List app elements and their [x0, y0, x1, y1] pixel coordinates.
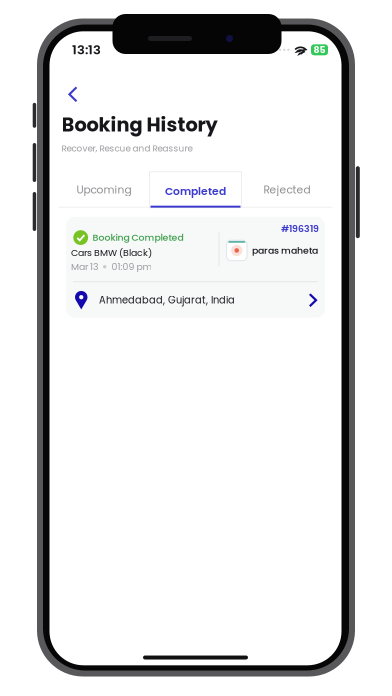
staticText: Completed [165, 184, 226, 199]
staticText: Upcoming [76, 182, 131, 197]
staticText: Cars BMW (Black) [71, 246, 152, 259]
staticText: Mar 13 [71, 260, 98, 273]
staticText: Ahmedabad, Gujarat, India [99, 293, 235, 307]
staticText: paras maheta [252, 244, 318, 257]
staticText: Booking History [61, 111, 217, 138]
staticText: Booking Completed [93, 231, 184, 244]
button[interactable]: Completed [149, 172, 241, 208]
button[interactable]: Back [61, 83, 83, 105]
button[interactable]: Booking Completed [66, 217, 325, 318]
staticText: Rejected [263, 182, 310, 197]
staticText: 13:13 [72, 41, 101, 59]
button[interactable]: Upcoming [58, 172, 149, 208]
staticText: Recover, Rescue and Reassure [61, 142, 192, 155]
staticText: #196319 [281, 222, 319, 235]
staticText: 85 [313, 43, 325, 56]
staticText: 01:09 pm [111, 260, 152, 273]
button[interactable]: Rejected [241, 172, 332, 208]
